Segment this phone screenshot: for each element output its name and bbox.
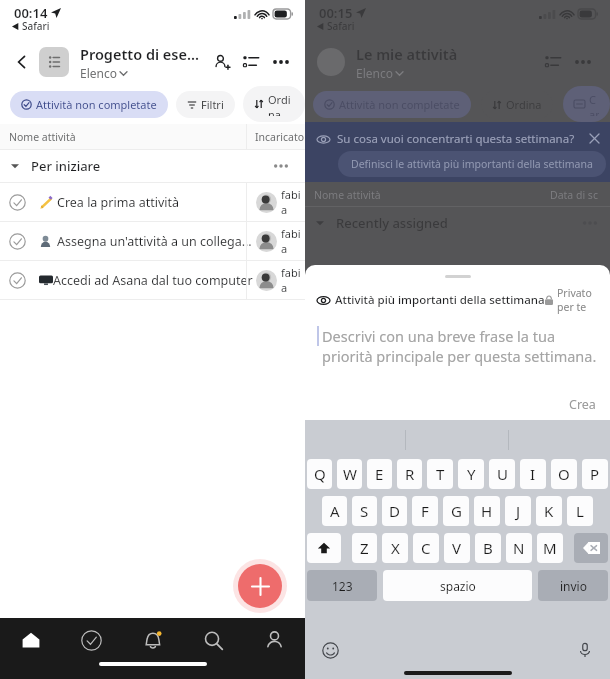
staticText: L (576, 501, 584, 521)
button[interactable]: 123 (307, 570, 377, 601)
button[interactable]: invio (538, 570, 608, 601)
button[interactable]: Assegna un'attività a un collega... (0, 222, 305, 260)
staticText: Nome attività (314, 188, 381, 202)
button[interactable]: Add task (238, 564, 282, 608)
staticText: Elenco (356, 65, 393, 81)
button[interactable]: Q (307, 459, 332, 489)
button[interactable]: B (475, 533, 501, 563)
button[interactable]: Close (585, 129, 603, 147)
button[interactable]: Y (458, 459, 484, 489)
button[interactable]: Attività non completate (313, 91, 471, 118)
button[interactable]: Dictation (574, 639, 596, 661)
button[interactable]: Crea la prima attività (0, 183, 305, 221)
button[interactable]: Crea (567, 396, 598, 413)
button[interactable]: Inbox (122, 618, 183, 662)
button[interactable]: H (474, 496, 500, 526)
button[interactable]: D (382, 496, 407, 526)
staticText: Recently assigned (336, 214, 448, 232)
staticText: F (421, 501, 429, 521)
button[interactable]: U (489, 459, 515, 489)
staticText: fabia (281, 265, 305, 295)
staticText: Z (360, 538, 369, 558)
staticText: V (452, 538, 462, 558)
button[interactable]: Ordina (481, 91, 553, 118)
button[interactable]: V (444, 533, 470, 563)
button[interactable]: Campi (563, 86, 610, 122)
staticText: C (421, 538, 431, 558)
button[interactable]: J (505, 496, 531, 526)
staticText: Filtri (201, 97, 224, 112)
button[interactable]: K (536, 496, 562, 526)
staticText: Progetto di esem... (80, 44, 206, 64)
staticText: Safari (327, 19, 355, 33)
button[interactable]: A (322, 496, 347, 526)
button[interactable]: Search (183, 618, 244, 662)
button[interactable]: My tasks (61, 618, 122, 662)
button[interactable]: Definisci le attività più importanti del… (338, 151, 606, 177)
staticText: D (389, 501, 400, 521)
staticText: S (360, 501, 369, 521)
button[interactable]: Shift (307, 533, 341, 563)
button[interactable]: I (520, 459, 546, 489)
button[interactable]: G (443, 496, 469, 526)
staticText: fabia (281, 187, 305, 217)
button[interactable]: View options (236, 47, 266, 77)
staticText: Elenco (80, 65, 117, 81)
staticText: G (451, 501, 462, 521)
button[interactable]: More options (266, 47, 296, 77)
staticText: E (375, 464, 384, 484)
staticText: Data di sc (550, 188, 598, 202)
button[interactable]: Ordina (243, 86, 305, 122)
button[interactable]: E (367, 459, 392, 489)
button[interactable]: Elenco (356, 65, 403, 81)
button[interactable]: Recently assigned (305, 207, 610, 239)
staticText: Attività non completate (36, 97, 157, 112)
button[interactable]: F (412, 496, 438, 526)
button[interactable]: spazio (383, 570, 532, 601)
button[interactable]: S (352, 496, 377, 526)
staticText: B (483, 538, 493, 558)
button[interactable]: W (337, 459, 362, 489)
staticText: Per iniziare (31, 157, 101, 175)
staticText: Y (467, 464, 476, 484)
staticText: Su cosa vuoi concentrarti questa settima… (337, 131, 575, 147)
staticText: Le mie attività (356, 44, 458, 64)
button[interactable]: O (551, 459, 577, 489)
staticText: Crea (569, 396, 596, 413)
button[interactable]: Accedi ad Asana dal tuo computer (0, 261, 305, 299)
button[interactable]: M (537, 533, 563, 563)
staticText: O (558, 464, 570, 484)
button[interactable]: Backspace (574, 533, 608, 563)
staticText: Campi (589, 92, 599, 116)
staticText: Q (314, 464, 326, 484)
button[interactable]: Elenco (80, 65, 127, 81)
button[interactable]: More options (568, 47, 598, 77)
staticText: Ordina (506, 97, 542, 112)
button[interactable]: Z (352, 533, 377, 563)
staticText: Attività più importanti della settimana (335, 292, 545, 308)
button[interactable]: Per iniziare (0, 150, 305, 182)
staticText: A (330, 501, 340, 521)
button[interactable]: R (397, 459, 422, 489)
button[interactable]: View options (538, 47, 568, 77)
staticText: K (544, 501, 554, 521)
button[interactable]: Back (9, 49, 35, 75)
staticText: Safari (22, 19, 50, 33)
button[interactable]: N (506, 533, 532, 563)
button[interactable]: L (567, 496, 593, 526)
button[interactable]: X (382, 533, 408, 563)
staticText: P (590, 464, 600, 484)
button[interactable]: Home (0, 618, 61, 662)
button[interactable]: Profile (244, 618, 305, 662)
staticText: Incaricato (255, 130, 305, 144)
staticText: N (513, 538, 525, 558)
button[interactable]: Add member (206, 47, 236, 77)
button[interactable]: Emoji (319, 639, 341, 661)
button[interactable]: Attività non completate (10, 91, 168, 118)
button[interactable]: P (582, 459, 608, 489)
staticText: X (391, 538, 400, 558)
button[interactable]: C (413, 533, 439, 563)
staticText: Privato per te (557, 286, 600, 314)
button[interactable]: Filtri (176, 91, 235, 118)
button[interactable]: T (427, 459, 453, 489)
